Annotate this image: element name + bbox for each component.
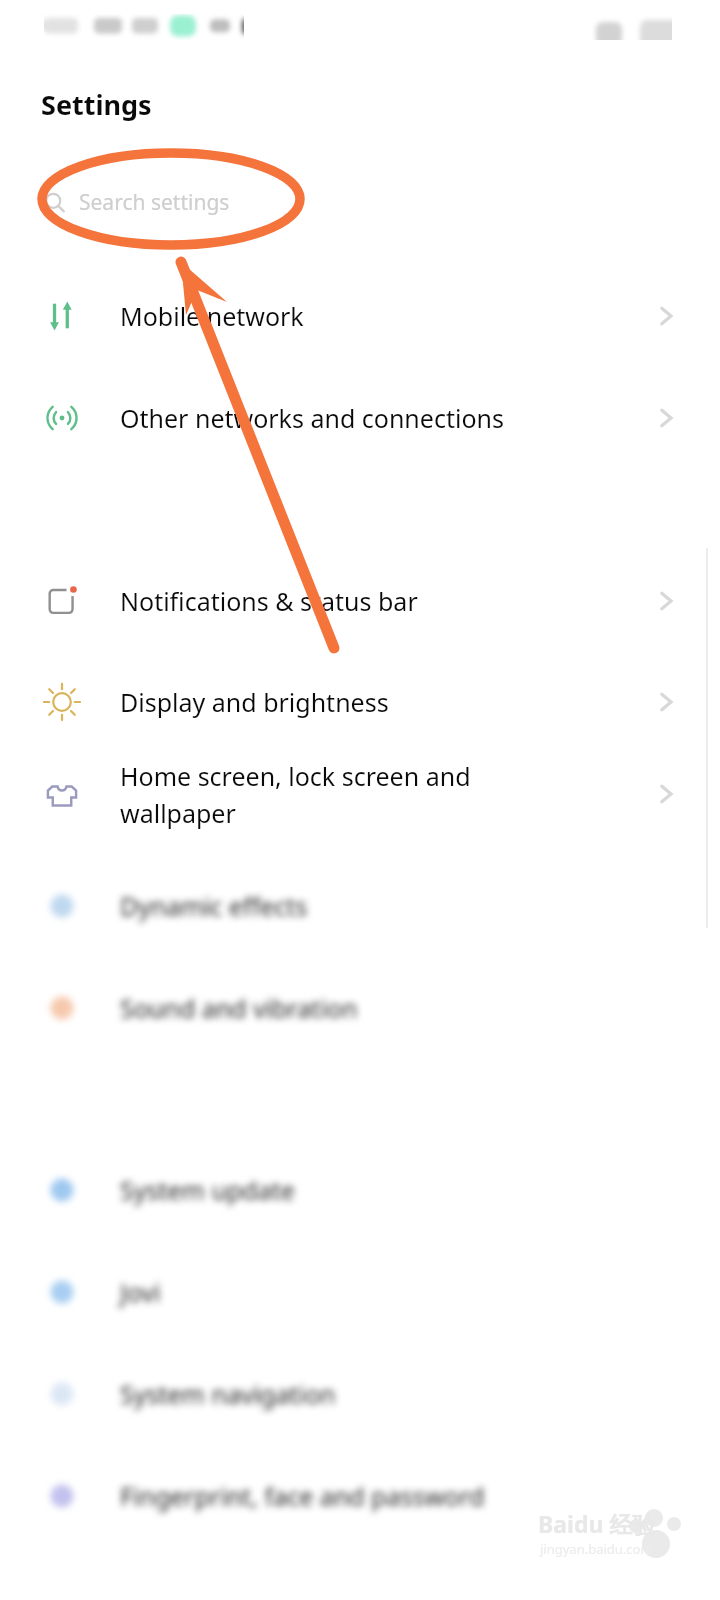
staticText: Fingerprint, face and password — [120, 1479, 485, 1513]
staticText: Mobile network — [120, 299, 304, 333]
button[interactable]: Other networks and connections — [0, 378, 720, 458]
staticText: Sound and vibration — [120, 991, 358, 1025]
button[interactable]: Search settings — [40, 176, 370, 228]
button[interactable]: Fingerprint, face and password — [0, 1456, 720, 1536]
button[interactable]: Notifications & status bar — [0, 561, 720, 641]
button[interactable]: Sound and vibration — [0, 968, 720, 1048]
staticText: Notifications & status bar — [120, 584, 418, 618]
staticText: System update — [120, 1173, 295, 1207]
button[interactable]: Display and brightness — [0, 662, 720, 742]
button[interactable]: Jovi — [0, 1252, 720, 1332]
staticText: Dynamic effects — [120, 889, 308, 923]
staticText: System navigation — [120, 1377, 336, 1411]
staticText: Other networks and connections — [120, 401, 504, 435]
staticText: jingyan.baidu.com — [540, 1540, 653, 1558]
staticText: Home screen, lock screen and wallpaper — [120, 759, 471, 830]
staticText: Jovi — [120, 1275, 161, 1309]
staticText: Display and brightness — [120, 685, 389, 719]
button[interactable]: Mobile network — [0, 276, 720, 356]
staticText: Search settings — [79, 188, 230, 217]
button[interactable]: System navigation — [0, 1354, 720, 1434]
staticText: Baidu 经验 — [538, 1508, 656, 1539]
button[interactable]: Dynamic effects — [0, 866, 720, 946]
button[interactable]: Home screen, lock screen and wallpaper — [0, 746, 720, 842]
staticText: Settings — [41, 86, 152, 123]
button[interactable]: System update — [0, 1150, 720, 1230]
